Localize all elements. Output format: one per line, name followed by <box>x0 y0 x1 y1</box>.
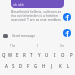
button[interactable]: Y <box>35 49 43 60</box>
staticText: ész ezt lehetetlen is a hirtelen <box>11 13 63 18</box>
button[interactable]: The <box>0 42 25 49</box>
button[interactable]: K <box>56 60 64 71</box>
staticText: O <box>61 52 65 58</box>
button[interactable]: W <box>7 49 14 60</box>
button[interactable] <box>11 0 64 8</box>
staticText: R <box>23 52 26 58</box>
button[interactable]: I'm <box>50 42 75 49</box>
button[interactable]: S <box>10 60 17 71</box>
button[interactable]: Facebook profile <box>63 29 71 37</box>
staticText: I'm <box>60 44 65 48</box>
button[interactable]: I <box>25 42 50 49</box>
staticText: P <box>70 52 73 58</box>
staticText: S <box>12 63 15 69</box>
button[interactable]: Facebook profile <box>63 13 71 21</box>
button[interactable]: E <box>14 49 21 60</box>
staticText: I <box>37 44 39 48</box>
other: Camera <box>3 34 8 38</box>
staticText: J <box>51 63 53 69</box>
button[interactable]: U <box>43 49 51 60</box>
staticText: L <box>67 63 70 69</box>
staticText: E <box>16 52 19 58</box>
button[interactable]: J <box>48 60 56 71</box>
staticText: W <box>8 52 13 58</box>
button[interactable]: L <box>64 60 72 71</box>
staticText: Q <box>2 52 6 58</box>
staticText: K <box>59 63 62 69</box>
button[interactable]: I <box>51 49 59 60</box>
staticText: G <box>34 63 38 69</box>
staticText: Send message <box>12 33 36 38</box>
staticText: A <box>5 63 8 69</box>
staticText: ok akk <box>13 2 24 7</box>
staticText: Beszélnünk kellene, szólnom az <box>11 9 63 14</box>
button[interactable]: G <box>32 60 40 71</box>
staticText: I <box>54 52 56 58</box>
staticText: H <box>42 63 46 69</box>
staticText: F <box>27 63 30 69</box>
button[interactable]: Q <box>0 49 7 60</box>
button[interactable]: O <box>59 49 67 60</box>
button[interactable]: A <box>3 60 10 71</box>
button[interactable]: T <box>28 49 35 60</box>
button[interactable]: F <box>24 60 32 71</box>
button[interactable]: Camera <box>0 31 75 40</box>
button[interactable]: R <box>21 49 28 60</box>
staticText: T <box>30 52 33 58</box>
button[interactable]: P <box>67 49 75 60</box>
staticText: Y <box>38 52 41 58</box>
staticText: The <box>10 44 16 48</box>
button[interactable]: H <box>40 60 48 71</box>
button[interactable]: D <box>17 60 24 71</box>
staticText: marciant! T are az este rendben <box>11 17 63 22</box>
staticText: D <box>19 63 23 69</box>
staticText: U <box>45 52 49 58</box>
